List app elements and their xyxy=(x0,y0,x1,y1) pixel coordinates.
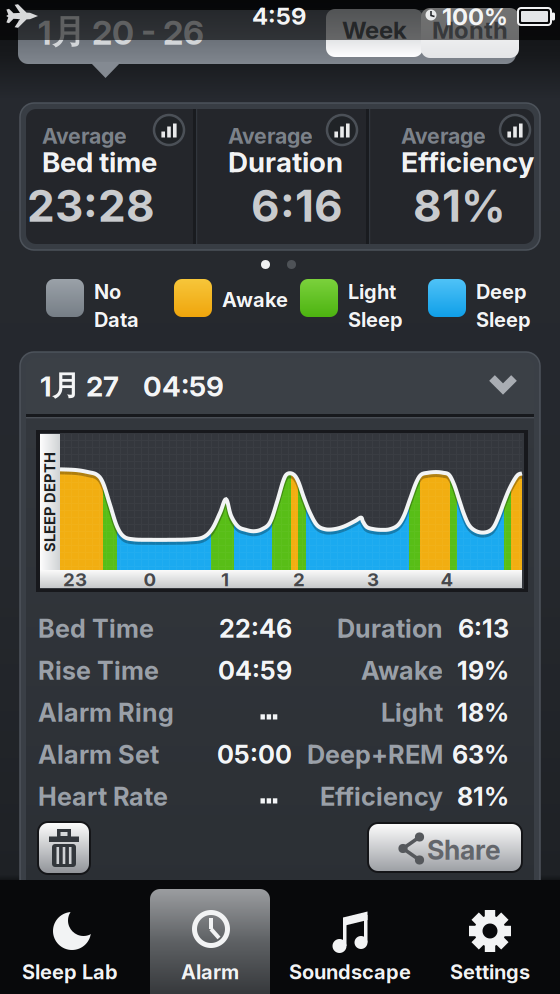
staticText: Awake xyxy=(222,287,288,312)
button[interactable]: Show chart xyxy=(152,113,186,147)
staticText: 4:59 xyxy=(252,1,306,30)
staticText: 2 xyxy=(293,568,305,591)
staticText: 23:28 xyxy=(27,179,155,232)
staticText: Settings xyxy=(450,960,530,984)
staticText: Month xyxy=(432,15,508,44)
staticText: Sleep xyxy=(476,307,531,332)
button[interactable]: Show chart xyxy=(325,113,359,147)
staticText: Average xyxy=(401,123,486,149)
staticText: Bed time xyxy=(42,145,157,179)
staticText: Average xyxy=(42,123,127,149)
staticText: 81% xyxy=(413,179,506,232)
staticText: 22:46 xyxy=(219,613,292,644)
button[interactable]: Settings xyxy=(420,880,560,994)
button[interactable]: Soundscape xyxy=(280,880,420,994)
staticText: SLEEP DEPTH xyxy=(0,493,100,511)
staticText: Alarm Ring xyxy=(38,697,174,728)
staticText: 100% xyxy=(442,2,508,31)
staticText: 3 xyxy=(367,568,379,591)
staticText: 63% xyxy=(452,739,509,770)
staticText: Duration xyxy=(228,145,343,179)
staticText: 6:13 xyxy=(458,613,509,644)
staticText: Awake xyxy=(361,655,443,686)
button[interactable]: Sleep Lab xyxy=(0,880,140,994)
staticText: 04:59 xyxy=(218,655,292,686)
button[interactable]: Share xyxy=(368,823,522,872)
staticText: 18% xyxy=(457,697,509,728)
staticText: Alarm Set xyxy=(38,739,159,770)
staticText: 0 xyxy=(143,568,156,591)
staticText: 19% xyxy=(457,655,509,686)
staticText: Soundscape xyxy=(289,960,411,984)
staticText: Share xyxy=(427,834,501,866)
button[interactable]: Show chart xyxy=(498,113,532,147)
button[interactable]: Week xyxy=(326,9,423,57)
staticText: Deep+REM xyxy=(307,739,443,770)
staticText: Efficiency xyxy=(401,145,534,179)
staticText: 1 xyxy=(221,568,229,591)
staticText: 1月 20 - 26 xyxy=(38,11,204,53)
staticText: Sleep Lab xyxy=(22,960,118,984)
button[interactable]: Month xyxy=(421,8,519,58)
staticText: Efficiency xyxy=(320,781,443,812)
staticText: 6:16 xyxy=(251,179,343,232)
button[interactable]: Alarm xyxy=(140,880,280,994)
staticText: Deep xyxy=(476,279,527,304)
button[interactable]: Delete xyxy=(38,822,90,874)
staticText: 1月 27 04:59 xyxy=(40,368,224,403)
staticText: Rise Time xyxy=(38,655,159,686)
button[interactable]: Collapse xyxy=(484,374,522,394)
staticText: 81% xyxy=(457,781,509,812)
staticText: Alarm xyxy=(181,960,239,984)
staticText: Average xyxy=(228,123,313,149)
staticText: Light xyxy=(381,697,443,728)
staticText: Sleep xyxy=(348,307,403,332)
staticText: 4 xyxy=(440,568,453,591)
staticText: 05:00 xyxy=(217,739,292,770)
staticText: Heart Rate xyxy=(38,781,168,812)
staticText: Bed Time xyxy=(38,613,154,644)
staticText: No xyxy=(94,279,121,304)
staticText: 23 xyxy=(63,568,87,591)
staticText: Light xyxy=(348,279,396,304)
staticText: Data xyxy=(94,307,139,332)
staticText: Duration xyxy=(337,613,443,644)
staticText: Week xyxy=(342,15,407,44)
